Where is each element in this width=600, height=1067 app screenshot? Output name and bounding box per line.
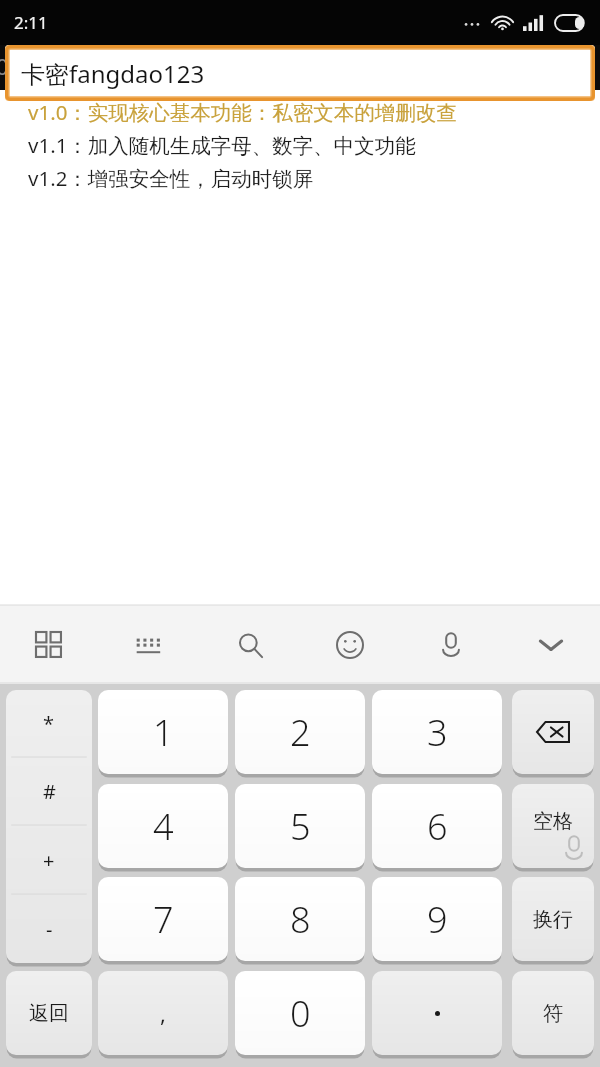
staticText: 2:11: [14, 11, 48, 34]
button[interactable]: 6: [372, 784, 502, 868]
staticText: 符: [543, 1001, 563, 1026]
button[interactable]: Voice input: [420, 612, 482, 678]
staticText: 7: [153, 895, 174, 944]
staticText: v1.2：增强安全性，启动时锁屏: [28, 164, 314, 192]
button[interactable]: 符: [512, 971, 594, 1055]
staticText: #: [43, 778, 56, 805]
button[interactable]: 4: [98, 784, 228, 868]
button[interactable]: 8: [235, 877, 365, 961]
button[interactable]: *: [6, 690, 92, 757]
staticText: ,: [160, 998, 166, 1028]
button[interactable]: [372, 971, 502, 1055]
staticText: 4: [153, 802, 174, 851]
button[interactable]: -: [6, 895, 92, 963]
staticText: 换行: [533, 907, 573, 932]
button[interactable]: 空格: [512, 784, 594, 868]
staticText: -26 02:11:01: [0, 53, 80, 82]
button[interactable]: 7: [98, 877, 228, 961]
staticText: 8: [290, 895, 311, 944]
staticText: 2016-06-26 02:11:02: [104, 53, 303, 82]
button[interactable]: 换行: [512, 877, 594, 961]
button[interactable]: Apps: [18, 612, 80, 678]
button[interactable]: Backspace: [512, 690, 594, 774]
staticText: v1.1：加入随机生成字母、数字、中文功能: [28, 131, 416, 159]
staticText: *: [43, 710, 55, 737]
staticText: 9: [427, 895, 448, 944]
button[interactable]: 0: [235, 971, 365, 1055]
button[interactable]: Hide keyboard: [520, 612, 582, 678]
staticText: +: [43, 847, 55, 874]
button[interactable]: 3: [372, 690, 502, 774]
button[interactable]: Search: [219, 612, 281, 678]
staticText: v1.0：实现核心基本功能：私密文本的增删改查: [28, 98, 457, 126]
staticText: 0: [290, 989, 311, 1038]
button[interactable]: 2: [235, 690, 365, 774]
staticText: 1: [153, 708, 174, 757]
button[interactable]: ,: [98, 971, 228, 1055]
button[interactable]: Emoji: [319, 612, 381, 678]
staticText: 空格: [533, 809, 573, 834]
button[interactable]: Keyboard layout: [118, 612, 180, 678]
staticText: 返回: [29, 1001, 69, 1026]
button[interactable]: 返回: [6, 971, 92, 1055]
button[interactable]: 卡密fangdao123: [5, 45, 595, 101]
button[interactable]: 5: [235, 784, 365, 868]
staticText: 5: [290, 802, 311, 851]
staticText: 2: [290, 708, 311, 757]
staticText: 卡密fangdao123: [21, 57, 205, 90]
staticText: -: [46, 916, 53, 943]
button[interactable]: #: [6, 758, 92, 825]
button[interactable]: +: [6, 826, 92, 894]
staticText: 6: [427, 802, 448, 851]
button[interactable]: 9: [372, 877, 502, 961]
staticText: 3: [427, 708, 448, 757]
button[interactable]: 1: [98, 690, 228, 774]
